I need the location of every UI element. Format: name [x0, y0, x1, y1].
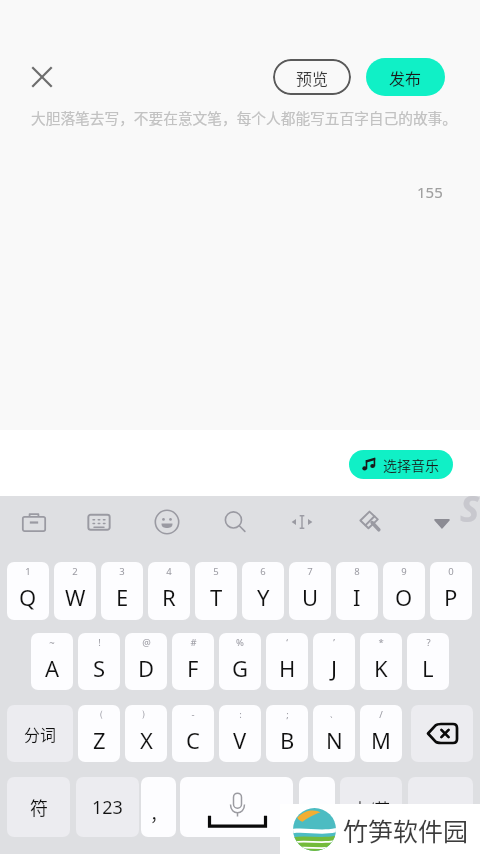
- staticText: :: [239, 708, 242, 721]
- staticText: M: [371, 725, 391, 755]
- staticText: -: [191, 708, 195, 721]
- staticText: H: [279, 653, 296, 683]
- button[interactable]: ，: [141, 777, 176, 837]
- staticText: B: [280, 725, 295, 755]
- button[interactable]: ?: [407, 633, 449, 690]
- staticText: N: [326, 725, 343, 755]
- staticText: G: [232, 653, 249, 683]
- button[interactable]: Search: [216, 503, 254, 541]
- staticText: D: [138, 653, 155, 683]
- staticText: X: [140, 725, 153, 755]
- button[interactable]: 5: [195, 562, 237, 620]
- button[interactable]: %: [219, 633, 261, 690]
- staticText: 6: [260, 565, 266, 578]
- staticText: 123: [92, 795, 123, 820]
- staticText: U: [302, 582, 319, 612]
- staticText: ’: [333, 636, 335, 649]
- staticText: Z: [93, 725, 106, 755]
- staticText: J: [331, 653, 338, 683]
- staticText: ‘: [286, 636, 288, 649]
- staticText: L: [422, 653, 434, 683]
- button[interactable]: -: [172, 705, 214, 762]
- button[interactable]: Keyboard: [80, 503, 118, 541]
- staticText: 。: [309, 801, 326, 826]
- button[interactable]: 选择音乐: [349, 450, 453, 479]
- staticText: W: [65, 582, 86, 612]
- button[interactable]: 0: [430, 562, 472, 620]
- button[interactable]: Tools: [15, 503, 53, 541]
- staticText: A: [45, 653, 60, 683]
- staticText: Q: [19, 582, 37, 612]
- button[interactable]: !: [78, 633, 120, 690]
- staticText: 9: [401, 565, 407, 578]
- button[interactable]: 3: [101, 562, 143, 620]
- staticText: 预览: [296, 66, 329, 89]
- button[interactable]: 6: [242, 562, 284, 620]
- button[interactable]: 中/英: [340, 777, 402, 837]
- staticText: K: [374, 653, 388, 683]
- staticText: /: [379, 708, 383, 721]
- button[interactable]: （: [78, 705, 120, 762]
- staticText: 中/英: [352, 796, 391, 819]
- staticText: 。: [432, 801, 449, 826]
- staticText: ~: [49, 636, 55, 649]
- staticText: 1: [25, 565, 31, 578]
- button[interactable]: Theme: [351, 503, 389, 541]
- button[interactable]: Move cursor: [283, 503, 321, 541]
- button[interactable]: Close: [26, 61, 58, 93]
- staticText: I: [353, 582, 361, 612]
- staticText: 符: [30, 794, 48, 820]
- staticText: （: [94, 708, 104, 720]
- staticText: #: [190, 636, 197, 649]
- staticText: 155: [417, 182, 443, 202]
- button[interactable]: :: [219, 705, 261, 762]
- button[interactable]: 分词: [7, 705, 73, 762]
- staticText: @: [142, 636, 151, 649]
- staticText: 2: [72, 565, 78, 578]
- staticText: ?: [426, 636, 431, 649]
- staticText: R: [162, 582, 176, 612]
- button[interactable]: 9: [383, 562, 425, 620]
- button[interactable]: ;: [266, 705, 308, 762]
- button[interactable]: 8: [336, 562, 378, 620]
- button[interactable]: ’: [313, 633, 355, 690]
- staticText: E: [116, 582, 129, 612]
- staticText: 3: [119, 565, 125, 578]
- button[interactable]: Hide keyboard: [423, 503, 461, 541]
- button[interactable]: Space: [180, 777, 293, 837]
- button[interactable]: Backspace: [411, 705, 473, 762]
- button[interactable]: 123: [76, 777, 139, 837]
- button[interactable]: ‘: [266, 633, 308, 690]
- staticText: C: [186, 725, 200, 755]
- staticText: !: [98, 636, 101, 649]
- button[interactable]: 。: [408, 777, 473, 837]
- button[interactable]: ）: [125, 705, 167, 762]
- staticText: 分词: [24, 722, 57, 745]
- staticText: S: [460, 484, 480, 533]
- staticText: 7: [307, 565, 313, 578]
- staticText: 8: [354, 565, 360, 578]
- staticText: 选择音乐: [383, 455, 439, 475]
- button[interactable]: 、: [313, 705, 355, 762]
- staticText: 0: [448, 565, 454, 578]
- staticText: %: [236, 636, 244, 649]
- button[interactable]: /: [360, 705, 402, 762]
- button[interactable]: 4: [148, 562, 190, 620]
- button[interactable]: @: [125, 633, 167, 690]
- button[interactable]: 1: [7, 562, 49, 620]
- button[interactable]: #: [172, 633, 214, 690]
- button[interactable]: 7: [289, 562, 331, 620]
- staticText: 竹笋软件园: [343, 812, 469, 848]
- button[interactable]: Emoji: [148, 503, 186, 541]
- button[interactable]: 预览: [273, 59, 351, 95]
- staticText: T: [210, 582, 223, 612]
- button[interactable]: 2: [54, 562, 96, 620]
- button[interactable]: 符: [7, 777, 70, 837]
- staticText: ，: [150, 801, 167, 826]
- button[interactable]: ~: [31, 633, 73, 690]
- button[interactable]: *: [360, 633, 402, 690]
- staticText: 4: [166, 565, 172, 578]
- staticText: 5: [213, 565, 219, 578]
- button[interactable]: 发布: [366, 58, 445, 96]
- button[interactable]: 。: [299, 777, 335, 837]
